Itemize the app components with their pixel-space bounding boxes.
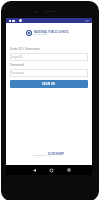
button[interactable]: Recents xyxy=(63,165,75,175)
button[interactable]: Home xyxy=(45,165,57,175)
button[interactable]: Password xyxy=(10,69,88,77)
button[interactable]: Login ID xyxy=(10,53,88,61)
staticText: NATIONAL PUBLIC SCHOOL xyxy=(34,30,69,33)
staticText: Password xyxy=(11,71,25,75)
staticText: Powered by xyxy=(33,153,47,156)
staticText: Enter ID / Username xyxy=(10,47,40,51)
button[interactable]: SIGN IN xyxy=(10,80,88,88)
button[interactable]: Back xyxy=(28,165,40,175)
staticText: QUICKERP xyxy=(48,152,65,156)
staticText: BANGALORE xyxy=(34,33,48,36)
staticText: SIGN IN xyxy=(42,82,56,86)
staticText: Login ID xyxy=(11,55,23,59)
staticText: Password xyxy=(10,63,24,67)
